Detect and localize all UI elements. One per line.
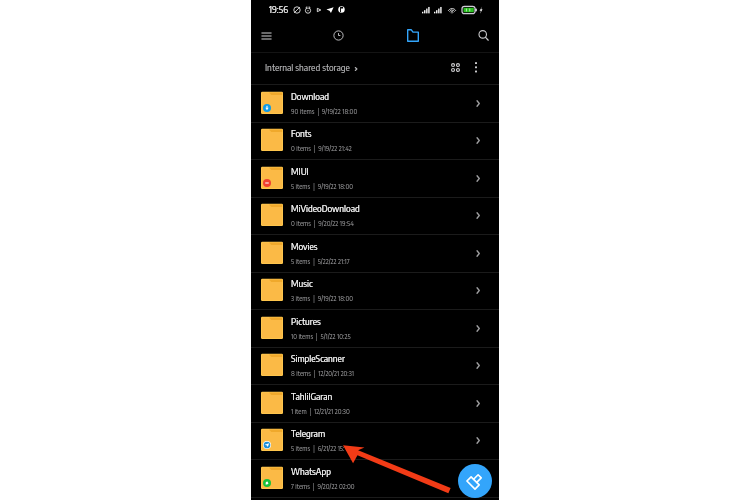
staticText: 0 items | 9/20/22 19:54 xyxy=(291,219,354,227)
staticText: Download xyxy=(291,91,330,102)
staticText: 5 items | 5/22/22 21:17 xyxy=(291,257,350,265)
staticText: TahlilGaran xyxy=(291,391,333,402)
button[interactable]: Music xyxy=(251,272,499,309)
button[interactable]: MIUI xyxy=(251,160,499,197)
staticText: 19:56 xyxy=(269,4,289,15)
staticText: 3 items | 9/19/22 18:00 xyxy=(291,294,353,302)
button[interactable]: Search xyxy=(471,19,495,52)
staticText: Telegram xyxy=(291,428,326,439)
button[interactable]: Download xyxy=(251,85,499,122)
staticText: 1 item | 12/21/21 20:30 xyxy=(291,407,350,415)
button[interactable]: Telegram xyxy=(251,422,499,459)
button[interactable]: Clean up storage xyxy=(458,464,492,498)
staticText: Fonts xyxy=(291,128,312,139)
button[interactable]: TahlilGaran xyxy=(251,385,499,422)
staticText: 5 items | 9/19/22 18:00 xyxy=(291,182,353,190)
button[interactable]: Switch to grid view xyxy=(446,58,464,76)
button[interactable]: WhatsApp xyxy=(251,460,499,497)
staticText: Internal shared storage xyxy=(265,62,350,73)
button[interactable]: MiVideoDownload xyxy=(251,197,499,234)
staticText: Music xyxy=(291,278,313,289)
staticText: 8 items | 12/20/21 20:31 xyxy=(291,369,355,377)
button[interactable]: Movies xyxy=(251,235,499,272)
staticText: Movies xyxy=(291,241,318,252)
button[interactable]: SimpleScanner xyxy=(251,347,499,384)
button[interactable]: Menu xyxy=(254,19,278,52)
staticText: 7 items | 9/20/22 02:00 xyxy=(291,482,355,490)
staticText: 10 items | 5/1/22 10:25 xyxy=(291,332,351,340)
staticText: MIUI xyxy=(291,166,309,177)
staticText: 5 items | 6/21/22 15: xyxy=(291,444,345,452)
staticText: Pictures xyxy=(291,316,321,327)
button[interactable]: Files xyxy=(401,19,425,52)
button[interactable]: Recent files xyxy=(326,19,350,52)
button[interactable]: Pictures xyxy=(251,310,499,347)
staticText: SimpleScanner xyxy=(291,353,345,364)
staticText: MiVideoDownload xyxy=(291,203,360,214)
button[interactable]: Internal shared storage xyxy=(265,62,359,73)
staticText: 90 items | 9/19/22 18:00 xyxy=(291,107,358,115)
staticText: 0 items | 9/19/22 21:42 xyxy=(291,144,352,152)
staticText: WhatsApp xyxy=(291,466,331,477)
button[interactable]: More options xyxy=(468,59,484,75)
button[interactable]: Fonts xyxy=(251,122,499,159)
